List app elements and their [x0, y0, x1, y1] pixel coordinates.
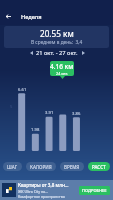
staticText: ЖК Ultra City на...: [18, 189, 49, 194]
staticText: ВРЕМЯ: [64, 164, 80, 170]
button[interactable]: 20.55 км: [4, 26, 109, 48]
staticText: ПОДРОБНЕЕ: [82, 188, 107, 193]
button[interactable]: Back: [0, 10, 17, 23]
staticText: 6.61: [18, 87, 27, 93]
staticText: В среднем в день: 3,4: [31, 39, 83, 46]
staticText: 1.98: [31, 127, 40, 133]
button[interactable]: Previous week: [26, 48, 36, 57]
staticText: 3.86: [72, 111, 81, 117]
staticText: ШАГ: [7, 164, 18, 170]
staticText: 20.55 км: [40, 28, 74, 39]
staticText: Комфортное пространство: [18, 194, 65, 199]
staticText: 21 окт. - 27 окт.: [36, 49, 78, 57]
button[interactable]: ВРЕМЯ: [60, 162, 84, 171]
staticText: РАССТ: [92, 164, 106, 170]
staticText: Неделя: [21, 13, 42, 21]
button[interactable]: РАССТ: [88, 162, 110, 171]
button[interactable]: Next week: [78, 48, 88, 57]
staticText: КАЛОРИЯ: [30, 164, 52, 170]
staticText: 5: [10, 104, 13, 110]
staticText: 4.16 км: [50, 62, 74, 71]
button[interactable]: Квартиры от 3,8 млн...: [0, 180, 113, 200]
staticText: 3.91: [45, 110, 54, 116]
button[interactable]: ПОДРОБНЕЕ: [79, 186, 110, 195]
staticText: 24 окт.: [56, 71, 69, 76]
button[interactable]: ШАГ: [3, 162, 22, 171]
button[interactable]: 4.16 км: [50, 61, 74, 76]
button[interactable]: КАЛОРИЯ: [26, 162, 56, 171]
staticText: Квартиры от 3,8 млн...: [18, 182, 69, 188]
